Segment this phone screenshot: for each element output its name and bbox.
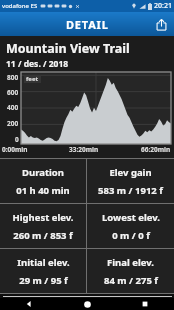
button[interactable]: Recent apps — [116, 298, 174, 310]
button[interactable]: Share — [150, 13, 172, 35]
staticText: DETAIL — [66, 17, 109, 32]
staticText: 20:21 — [154, 1, 172, 11]
staticText: 200 — [7, 119, 19, 128]
button[interactable]: Elev gain — [87, 159, 174, 203]
staticText: 33:20min — [69, 145, 99, 154]
staticText: Lowest elev. — [102, 211, 160, 224]
staticText: Mountain View Trail — [6, 40, 130, 57]
staticText: 260 m / 853 f — [13, 229, 73, 242]
button[interactable]: Initial elev. — [0, 249, 86, 293]
staticText: 0 — [15, 135, 19, 144]
staticText: 400 — [7, 103, 19, 112]
button[interactable]: Final elev. — [87, 249, 174, 293]
staticText: feet — [26, 75, 39, 83]
button[interactable]: Highest elev. — [0, 204, 86, 248]
staticText: 01 h 40 min — [16, 184, 70, 197]
staticText: 583 m / 1912 f — [98, 184, 163, 197]
staticText: 0 m / 0 f — [112, 229, 150, 242]
button[interactable]: Duration — [0, 159, 86, 203]
staticText: 800 — [7, 73, 19, 82]
button[interactable]: Back — [0, 298, 58, 310]
staticText: 11 / des. / 2018 — [6, 58, 69, 70]
button[interactable]: Lowest elev. — [87, 204, 174, 248]
staticText: 66:20min — [141, 145, 171, 154]
staticText: Initial elev. — [17, 256, 70, 269]
staticText: vodafone ES — [2, 2, 38, 10]
staticText: Highest elev. — [12, 211, 74, 224]
staticText: 600 — [7, 88, 19, 97]
staticText: 0:00min — [2, 145, 28, 154]
staticText: 29 m / 95 f — [19, 274, 68, 287]
staticText: Duration — [22, 166, 64, 179]
staticText: Elev gain — [109, 166, 152, 179]
staticText: 84 m / 275 f — [104, 274, 158, 287]
button[interactable]: Home — [58, 298, 116, 310]
staticText: Final elev. — [107, 256, 154, 269]
